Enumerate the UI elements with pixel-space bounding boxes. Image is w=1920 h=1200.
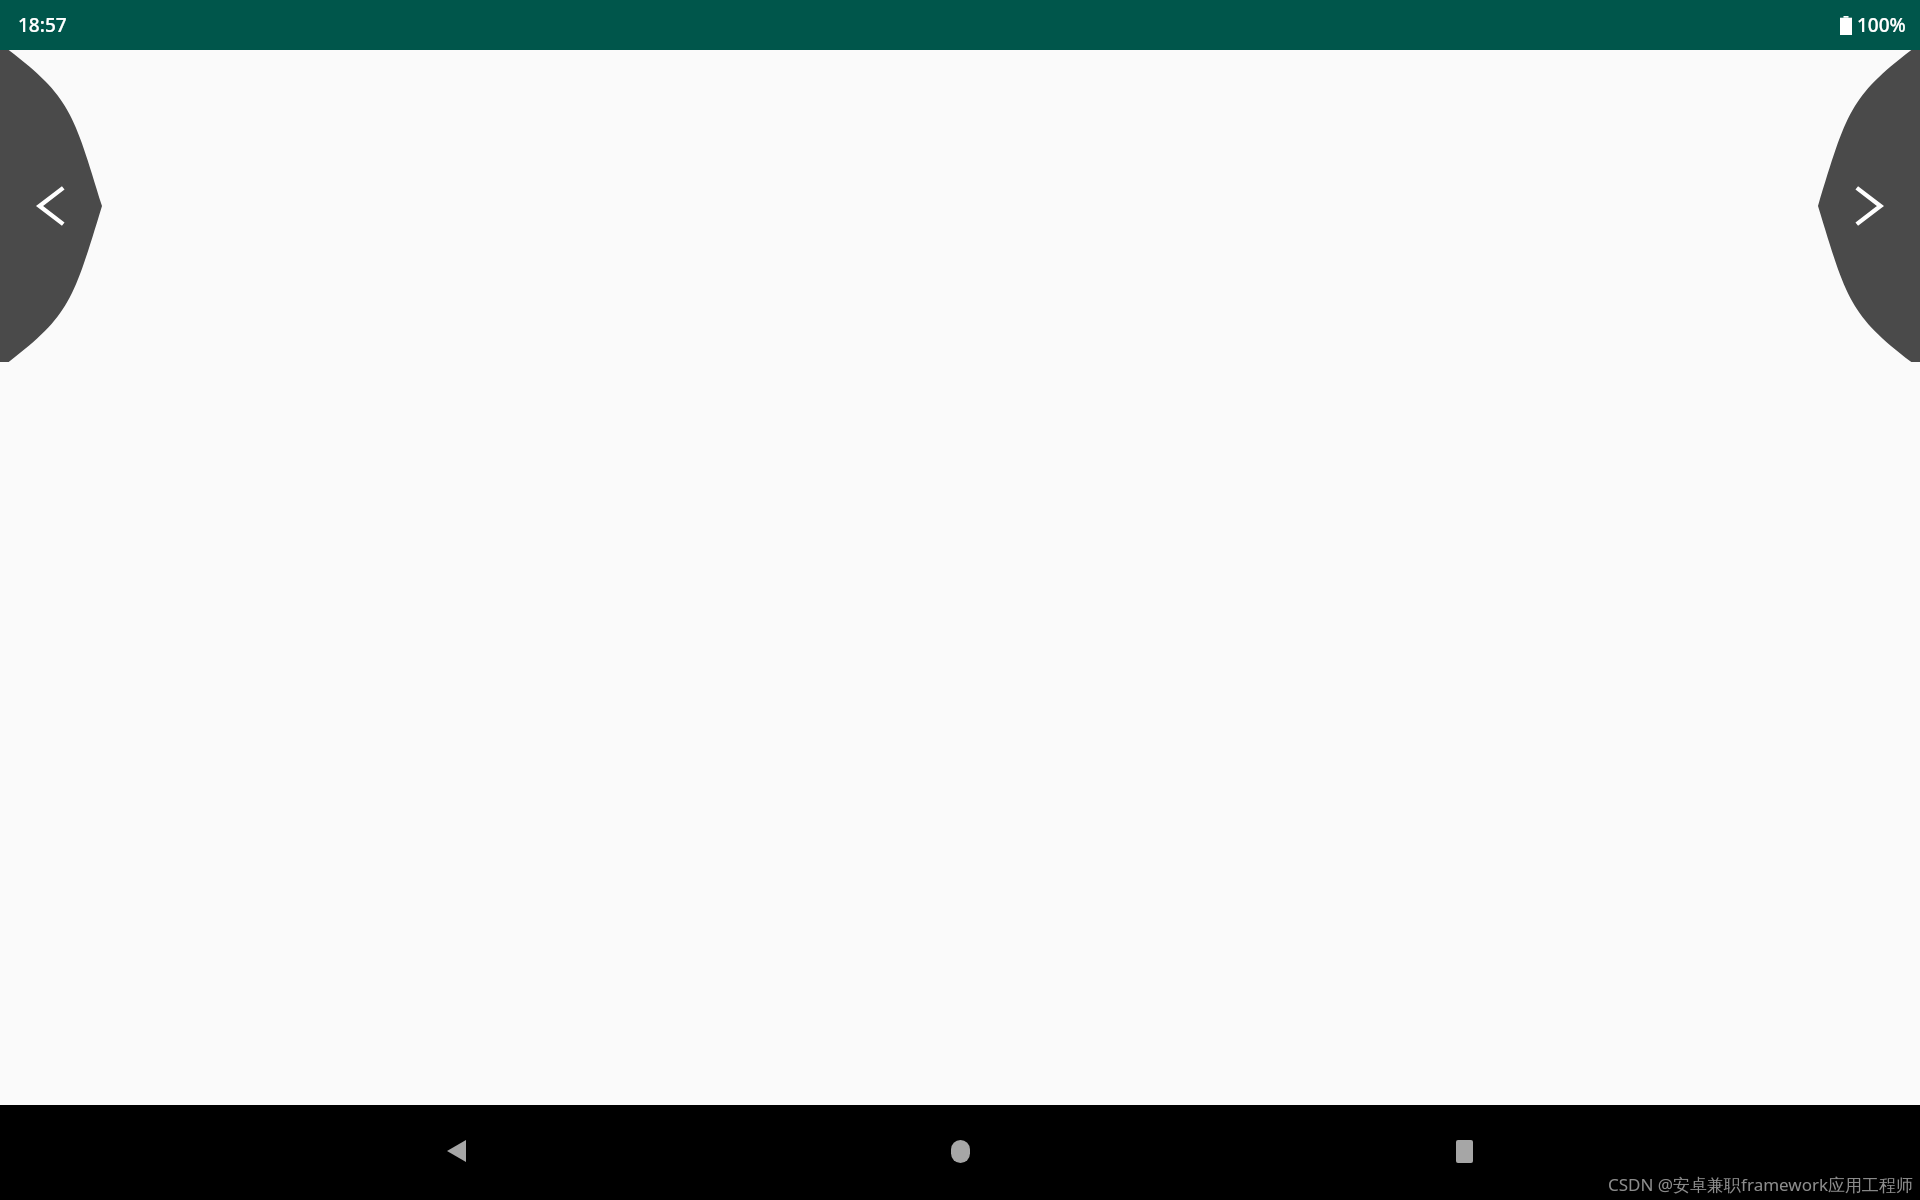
button[interactable]: Recent apps	[1447, 1134, 1481, 1168]
staticText: 100%	[1857, 12, 1906, 38]
button[interactable]: Next	[1818, 50, 1920, 362]
staticText: CSDN @安卓兼职framework应用工程师	[1608, 1173, 1914, 1196]
staticText: 18:57	[18, 12, 67, 38]
button[interactable]: Home	[943, 1134, 977, 1168]
button[interactable]: Back	[439, 1134, 473, 1168]
button[interactable]: Previous	[0, 50, 102, 362]
